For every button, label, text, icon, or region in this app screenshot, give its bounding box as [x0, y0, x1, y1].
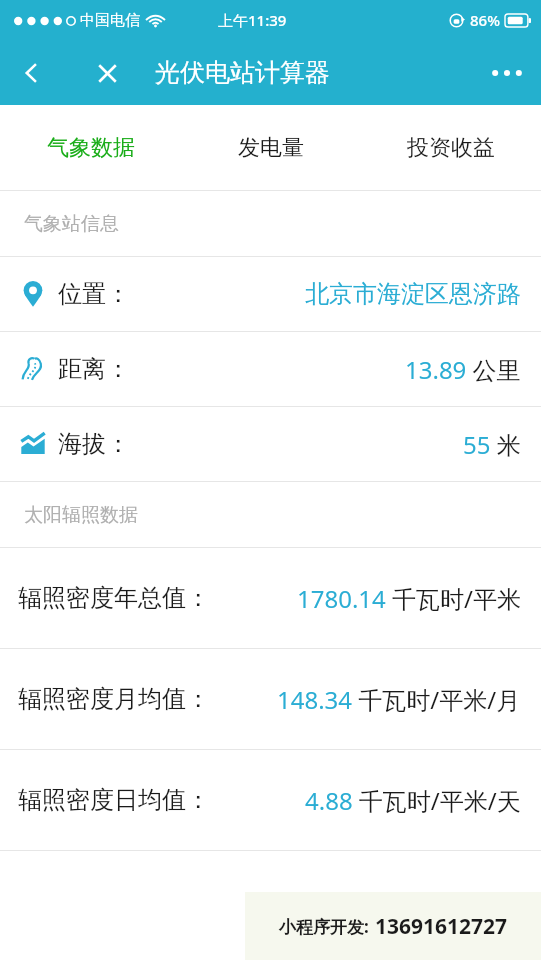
button[interactable]: 位置： [0, 257, 541, 331]
button[interactable]: 辐照密度月均值： [0, 649, 541, 749]
button[interactable]: 距离： [0, 332, 541, 406]
staticText: 4.88 千瓦时/平米/天 [305, 784, 521, 817]
button[interactable]: 小程序开发: [245, 892, 541, 960]
staticText: 辐照密度日均值： [18, 785, 210, 815]
button[interactable]: More options [481, 47, 533, 99]
staticText: 148.34 千瓦时/平米/月 [277, 683, 521, 716]
staticText: 气象站信息 [24, 212, 119, 236]
staticText: 投资收益 [407, 134, 495, 162]
button[interactable]: 辐照密度日均值： [0, 750, 541, 850]
staticText: 上午11:39 [218, 10, 287, 30]
staticText: 13.89 公里 [405, 353, 521, 386]
staticText: 气象数据 [47, 134, 135, 162]
staticText: 中国电信 [80, 11, 140, 30]
staticText: 1780.14 千瓦时/平米 [297, 582, 521, 615]
button[interactable]: Back [8, 49, 56, 97]
button[interactable]: 辐照密度年总值： [0, 548, 541, 648]
staticText: 辐照密度月均值： [18, 684, 210, 714]
staticText: 太阳辐照数据 [24, 503, 138, 527]
staticText: 北京市海淀区恩济路 [305, 279, 521, 309]
staticText: 13691612727 [375, 912, 508, 941]
staticText: 光伏电站计算器 [155, 57, 330, 88]
button[interactable]: 气象数据 [0, 105, 181, 190]
staticText: 发电量 [238, 134, 304, 162]
button[interactable]: 投资收益 [361, 105, 541, 190]
staticText: 距离： [58, 354, 130, 384]
button[interactable]: Close [83, 49, 131, 97]
staticText: 位置： [58, 279, 130, 309]
staticText: 小程序开发: [279, 915, 369, 938]
button[interactable]: 海拔： [0, 407, 541, 481]
staticText: 86% [470, 10, 500, 30]
button[interactable]: 发电量 [181, 105, 361, 190]
staticText: 海拔： [58, 429, 130, 459]
staticText: 辐照密度年总值： [18, 583, 210, 613]
staticText: 55 米 [463, 428, 521, 461]
